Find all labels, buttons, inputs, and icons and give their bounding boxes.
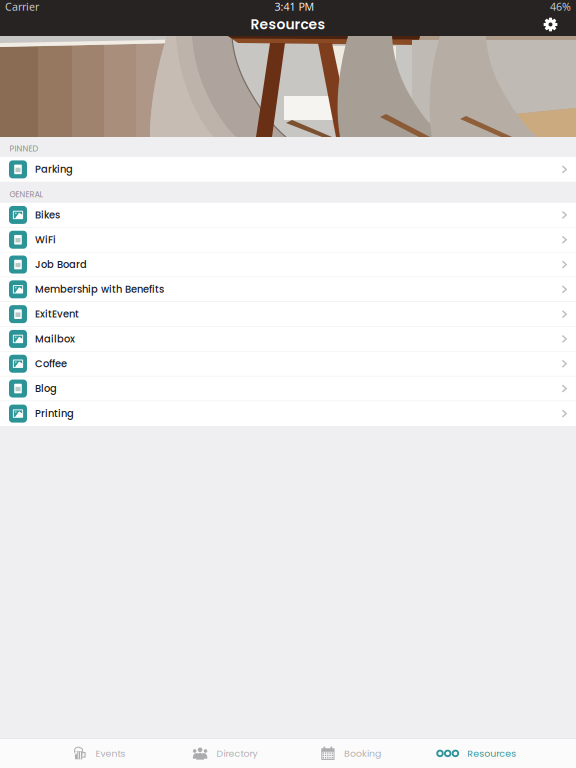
staticText: Membership with Benefits [35, 282, 164, 296]
staticText: 46% [550, 0, 571, 14]
staticText: Blog [35, 382, 57, 395]
button[interactable]: Parking [0, 157, 576, 182]
staticText: Carrier [5, 0, 39, 14]
button[interactable]: WiFi [0, 228, 576, 252]
staticText: Parking [35, 162, 73, 176]
button[interactable]: Bikes [0, 203, 576, 228]
staticText: Printing [35, 407, 74, 420]
staticText: Resources [467, 747, 516, 760]
staticText: Mailbox [35, 332, 75, 346]
button[interactable]: Coffee [0, 352, 576, 376]
staticText: WiFi [35, 233, 56, 247]
staticText: 3:41 PM [274, 0, 314, 14]
staticText: Resources [250, 15, 325, 34]
button[interactable]: Settings [539, 13, 562, 36]
button[interactable]: Resources [414, 739, 540, 768]
staticText: ExitEvent [35, 307, 79, 321]
button[interactable]: Mailbox [0, 327, 576, 352]
staticText: PINNED [9, 143, 38, 154]
button[interactable]: Printing [0, 401, 576, 426]
staticText: GENERAL [9, 189, 43, 200]
staticText: Directory [217, 747, 258, 760]
button[interactable]: ExitEvent [0, 302, 576, 327]
button[interactable]: Booking [288, 739, 414, 768]
staticText: Coffee [35, 357, 67, 371]
button[interactable]: Events [36, 739, 162, 768]
staticText: Job Board [35, 258, 87, 271]
staticText: Events [95, 747, 125, 760]
button[interactable]: Job Board [0, 252, 576, 277]
button[interactable]: Blog [0, 376, 576, 401]
staticText: Bikes [35, 208, 60, 222]
staticText: Booking [344, 747, 381, 760]
button[interactable]: Directory [162, 739, 288, 768]
button[interactable]: Membership with Benefits [0, 277, 576, 302]
